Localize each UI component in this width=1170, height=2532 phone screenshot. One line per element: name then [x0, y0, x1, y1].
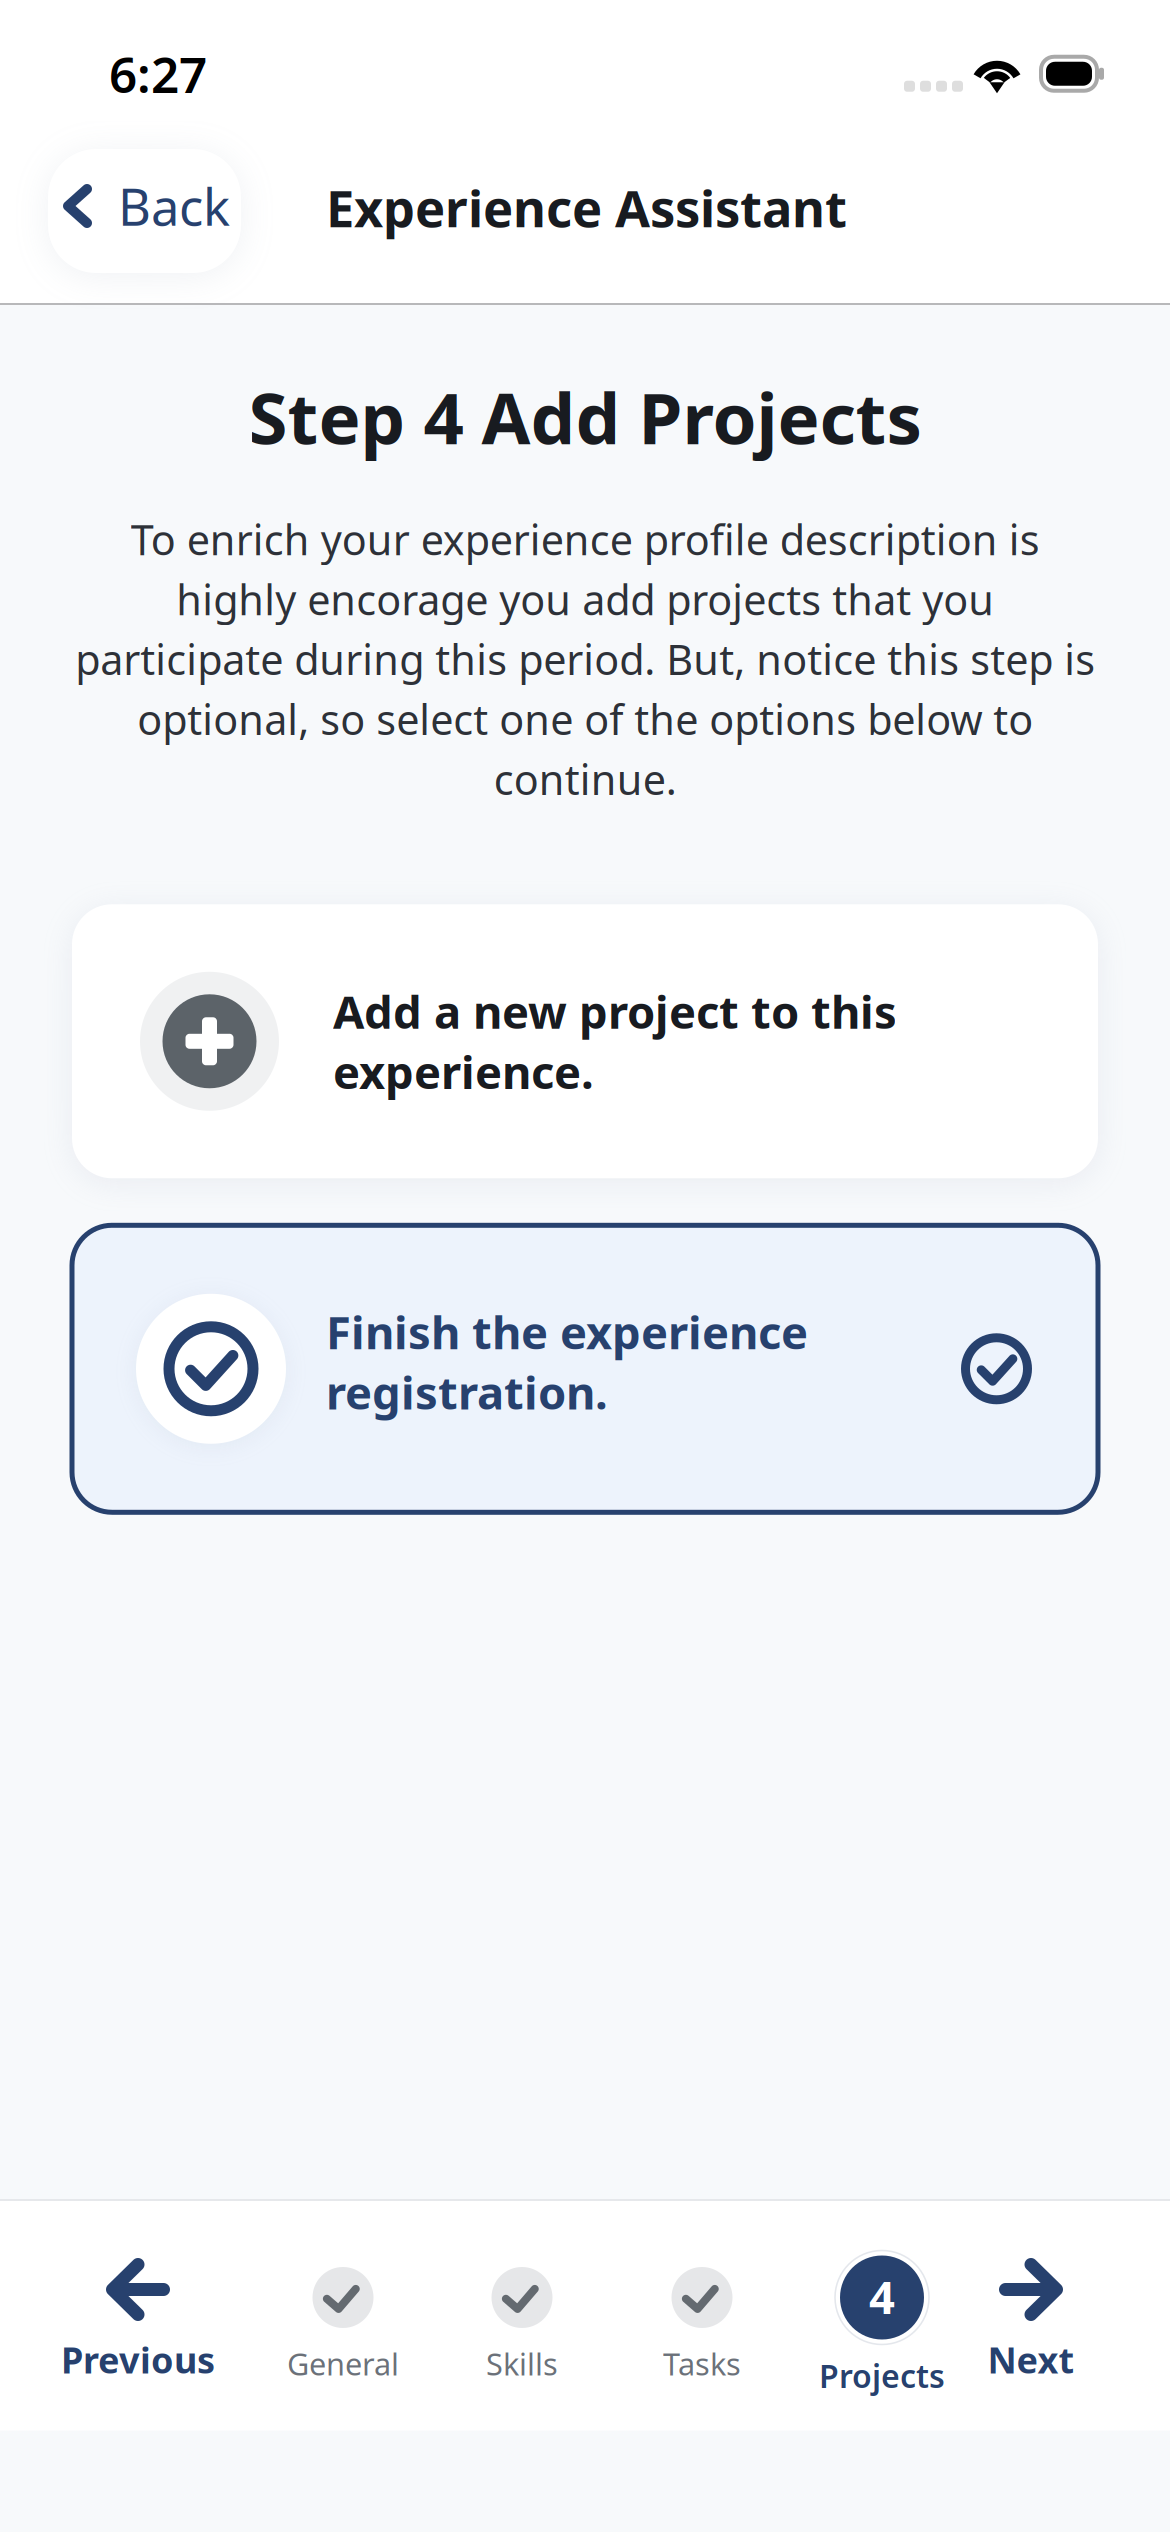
button[interactable]: General	[263, 2199, 423, 2430]
button[interactable]: 4	[792, 2199, 972, 2430]
button[interactable]: Back	[48, 149, 241, 273]
staticText: Tasks	[663, 2343, 741, 2384]
staticText: Experience Assistant	[326, 174, 847, 241]
staticText: 4	[869, 2266, 895, 2327]
button[interactable]: Next	[951, 2199, 1111, 2430]
button[interactable]: Previous	[38, 2199, 238, 2430]
staticText: Previous	[61, 2336, 215, 2383]
button[interactable]: Finish the experience registration.	[72, 1225, 1098, 1512]
button[interactable]: Skills	[442, 2199, 602, 2430]
staticText: 6:27	[109, 41, 207, 106]
staticText: Finish the experience registration.	[326, 1302, 808, 1422]
staticText: Step 4 Add Projects	[248, 370, 921, 464]
staticText: General	[287, 2343, 399, 2384]
staticText: Skills	[486, 2343, 558, 2384]
staticText: Add a new project to this experience.	[333, 981, 897, 1101]
staticText: Back	[118, 172, 230, 240]
button[interactable]: Add a new project to this experience.	[72, 904, 1098, 1178]
staticText: Projects	[819, 2354, 945, 2397]
staticText: To enrich your experience profile descri…	[75, 512, 1095, 806]
button[interactable]: Tasks	[622, 2199, 782, 2430]
staticText: Next	[987, 2336, 1074, 2383]
